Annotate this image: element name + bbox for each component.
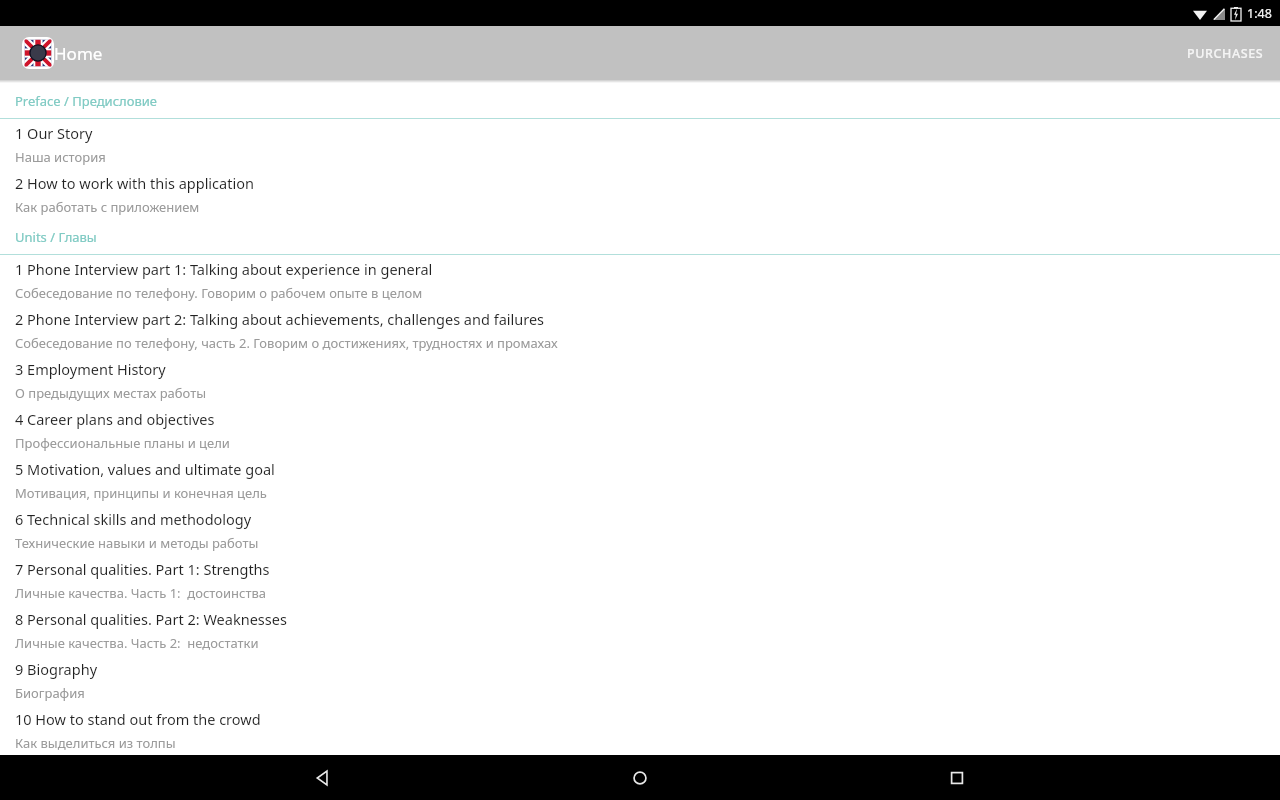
- button[interactable]: 2 How to work with this application: [0, 169, 1280, 219]
- staticText: Как выделиться из толпы: [15, 734, 176, 752]
- staticText: 1 Phone Interview part 1: Talking about …: [15, 259, 433, 279]
- staticText: 3 Employment History: [15, 359, 166, 379]
- button[interactable]: 1 Our Story: [0, 119, 1280, 169]
- staticText: О предыдущих местах работы: [15, 384, 207, 402]
- staticText: Как работать с приложением: [15, 198, 200, 216]
- button[interactable]: 1 Phone Interview part 1: Talking about …: [0, 255, 1280, 305]
- staticText: Профессиональные планы и цели: [15, 434, 230, 452]
- staticText: 4 Career plans and objectives: [15, 409, 215, 429]
- button[interactable]: 2 Phone Interview part 2: Talking about …: [0, 305, 1280, 355]
- staticText: 10 How to stand out from the crowd: [15, 709, 261, 729]
- staticText: Мотивация, принципы и конечная цель: [15, 484, 267, 502]
- button[interactable]: Back: [299, 755, 347, 800]
- button[interactable]: PURCHASES: [1171, 31, 1280, 76]
- staticText: Личные качества. Часть 1: достоинства: [15, 584, 267, 602]
- button[interactable]: 6 Technical skills and methodology: [0, 505, 1280, 555]
- staticText: 6 Technical skills and methodology: [15, 509, 252, 529]
- staticText: PURCHASES: [1187, 45, 1264, 62]
- button[interactable]: 4 Career plans and objectives: [0, 405, 1280, 455]
- staticText: 9 Biography: [15, 659, 98, 679]
- staticText: 2 How to work with this application: [15, 173, 254, 193]
- staticText: Биография: [15, 684, 85, 702]
- staticText: 2 Phone Interview part 2: Talking about …: [15, 309, 545, 329]
- button[interactable]: 7 Personal qualities. Part 1: Strengths: [0, 555, 1280, 605]
- button[interactable]: 8 Personal qualities. Part 2: Weaknesses: [0, 605, 1280, 655]
- staticText: Preface / Предисловие: [15, 92, 157, 110]
- other: App icon: [22, 37, 54, 69]
- button[interactable]: 3 Employment History: [0, 355, 1280, 405]
- staticText: Units / Главы: [15, 228, 97, 246]
- button[interactable]: 10 How to stand out from the crowd: [0, 705, 1280, 755]
- staticText: 7 Personal qualities. Part 1: Strengths: [15, 559, 270, 579]
- button[interactable]: Recents: [933, 755, 981, 800]
- staticText: Собеседование по телефону. Говорим о раб…: [15, 284, 423, 302]
- staticText: Home: [54, 42, 103, 65]
- staticText: Наша история: [15, 148, 106, 166]
- staticText: 1 Our Story: [15, 123, 93, 143]
- staticText: 8 Personal qualities. Part 2: Weaknesses: [15, 609, 287, 629]
- staticText: Технические навыки и методы работы: [15, 534, 259, 552]
- staticText: Собеседование по телефону, часть 2. Гово…: [15, 334, 558, 352]
- staticText: 5 Motivation, values and ultimate goal: [15, 459, 275, 479]
- button[interactable]: 5 Motivation, values and ultimate goal: [0, 455, 1280, 505]
- button[interactable]: Home: [616, 755, 664, 800]
- staticText: 1:48: [1247, 5, 1272, 22]
- button[interactable]: 9 Biography: [0, 655, 1280, 705]
- staticText: Личные качества. Часть 2: недостатки: [15, 634, 259, 652]
